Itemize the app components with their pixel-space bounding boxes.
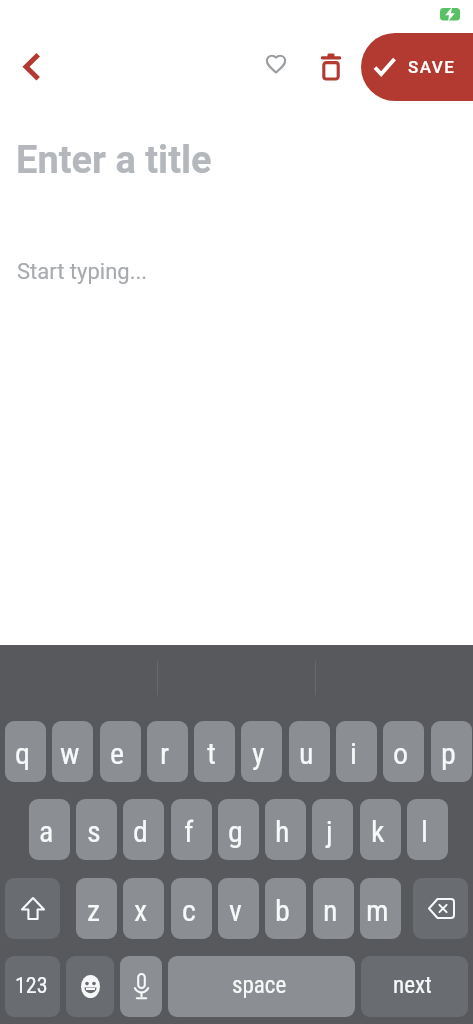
button[interactable]: d [123,799,164,860]
staticText: k [371,814,385,849]
staticText: v [229,893,242,928]
staticText: w [60,736,80,771]
staticText: g [228,814,243,849]
button[interactable]: SAVE [361,33,473,101]
button[interactable] [309,44,353,88]
button[interactable]: x [123,878,164,939]
button[interactable]: j [312,799,353,860]
button[interactable]: v [218,878,259,939]
button[interactable]: m [360,878,401,939]
button[interactable] [5,878,60,939]
button[interactable]: next [361,956,468,1017]
staticText: m [366,893,389,928]
button[interactable]: s [76,799,117,860]
button[interactable]: e [100,721,141,782]
staticText: z [87,893,101,928]
staticText: c [182,893,196,928]
staticText: SAVE [408,57,456,77]
button[interactable]: i [336,721,377,782]
staticText: j [326,814,333,849]
button[interactable]: z [76,878,117,939]
button[interactable]: b [265,878,306,939]
button[interactable]: h [265,799,306,860]
staticText: b [275,893,290,928]
staticText: f [184,814,194,849]
button[interactable]: u [289,721,330,782]
button[interactable]: n [313,878,354,939]
staticText: a [39,814,54,849]
button[interactable]: space [168,956,355,1017]
staticText: o [393,736,409,771]
button[interactable]: 123 [5,956,60,1017]
button[interactable]: t [194,721,235,782]
button[interactable]: w [52,721,93,782]
button[interactable] [413,878,468,939]
button[interactable] [12,44,56,88]
button[interactable]: p [431,721,472,782]
staticText: space [232,972,287,999]
button[interactable]: r [147,721,188,782]
button[interactable] [66,956,114,1017]
button[interactable]: q [5,721,46,782]
button[interactable]: c [171,878,212,939]
button[interactable]: l [407,799,448,860]
staticText: q [15,736,31,771]
button[interactable]: g [218,799,259,860]
button[interactable] [120,956,162,1017]
button[interactable]: k [360,799,401,860]
staticText: x [134,893,148,928]
staticText: next [393,972,432,999]
staticText: y [252,736,265,771]
staticText: 123 [15,973,48,999]
staticText: i [350,736,357,771]
button[interactable]: o [383,721,424,782]
staticText: t [207,736,216,771]
button[interactable]: f [171,799,212,860]
staticText: Enter a title [16,138,212,183]
staticText: d [133,814,148,849]
staticText: r [160,736,170,771]
button[interactable]: y [241,721,282,782]
staticText: p [441,736,456,771]
staticText: s [87,814,101,849]
staticText: e [110,736,125,771]
button[interactable]: a [29,799,70,860]
staticText: h [275,814,290,849]
staticText: n [323,893,338,928]
staticText: Start typing... [17,259,148,285]
button[interactable] [254,44,298,88]
staticText: l [421,814,428,849]
staticText: u [299,736,314,771]
